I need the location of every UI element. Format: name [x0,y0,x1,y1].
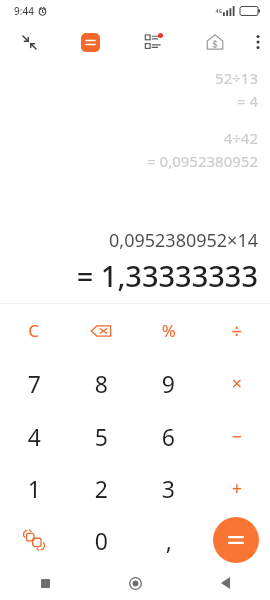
staticText: C [28,319,39,342]
button[interactable]: 8 [67,357,134,410]
button[interactable]: 4 [0,410,67,462]
button[interactable]: 9 [134,357,202,410]
staticText: ÷ [231,318,242,344]
button[interactable]: More options [246,22,270,62]
button[interactable]: 0 [67,514,134,566]
staticText: 5 [94,421,108,452]
staticText: = 1,33333333 [76,256,258,295]
staticText: 4G [215,8,222,15]
staticText: = 0,0952380952 [147,151,258,171]
staticText: 0 [94,525,108,556]
staticText: × [231,371,242,396]
button[interactable]: Calculator [58,22,122,62]
staticText: 0,0952380952×14 [109,228,258,253]
staticText: 6 [161,421,175,452]
button[interactable]: History [122,22,184,62]
staticText: 9:44 [14,4,34,18]
staticText: 9 [161,368,175,399]
button[interactable]: + [202,462,270,514]
button[interactable]: % [134,304,202,357]
button[interactable]: × [202,357,270,410]
button[interactable]: 3 [134,462,202,514]
staticText: 1 [27,473,41,504]
staticText: 4÷42 [223,128,258,148]
button[interactable]: 2 [67,462,134,514]
button[interactable]: Clear [0,304,67,357]
button[interactable]: 5 [67,410,134,462]
button[interactable]: Unit converter [0,514,67,566]
staticText: 52÷13 [215,68,258,88]
button[interactable]: 1 [0,462,67,514]
staticText: 2 [94,473,108,504]
staticText: 8 [94,368,108,399]
button[interactable]: Backspace [67,304,134,357]
staticText: 3 [161,473,175,504]
button[interactable]: Equals [202,514,270,566]
staticText: 7 [27,368,41,399]
button[interactable]: , [134,514,202,566]
staticText: 4 [27,421,41,452]
staticText: = 4 [236,91,258,111]
staticText: + [231,476,242,501]
button[interactable]: Collapse [0,22,58,62]
button[interactable]: − [202,410,270,462]
button[interactable]: Back [180,566,270,600]
button[interactable]: Loan calculator [184,22,246,62]
button[interactable]: Recent apps [0,566,90,600]
button[interactable]: Home [90,566,180,600]
staticText: , [165,525,172,556]
staticText: − [231,424,242,449]
button[interactable]: 7 [0,357,67,410]
staticText: % [161,319,176,342]
button[interactable]: ÷ [202,304,270,357]
button[interactable]: 6 [134,410,202,462]
